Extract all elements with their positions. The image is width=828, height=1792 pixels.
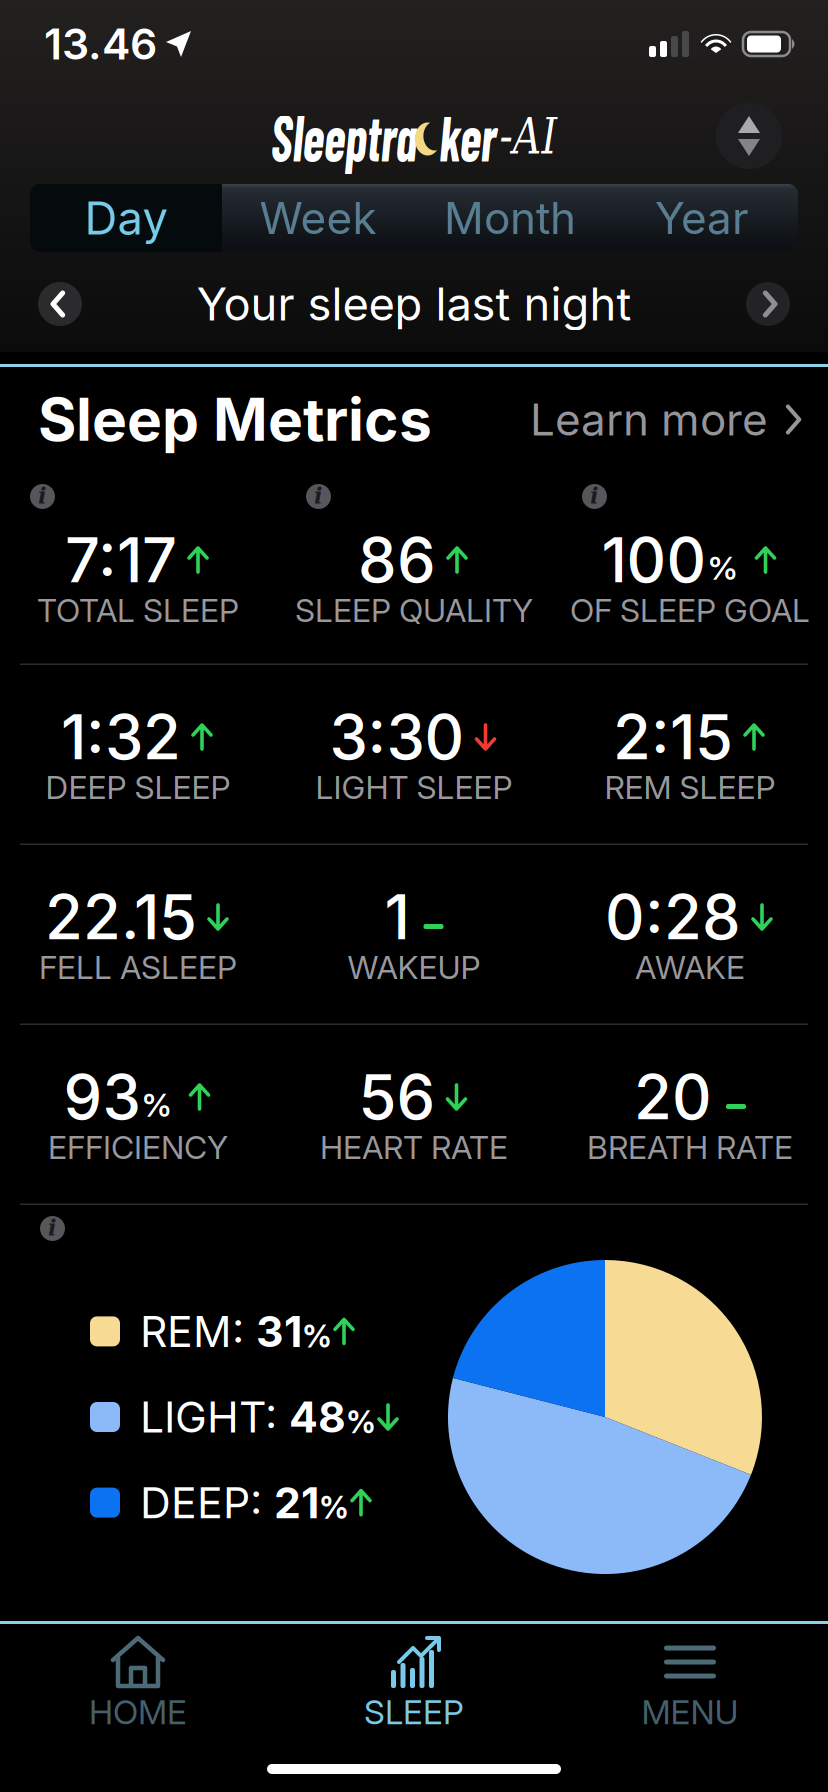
staticText: 1:32 [61,700,181,774]
staticText: % [319,1489,349,1526]
button[interactable]: Day [30,184,222,252]
staticText: Sleeptra [230,98,418,174]
staticText: 86 [358,523,436,597]
button[interactable]: Week [222,184,414,252]
staticText: REM SLEEP [604,768,775,807]
staticText: 20 [634,1060,712,1134]
button[interactable]: Month [414,184,606,252]
staticText: EFFICIENCY [48,1128,228,1167]
button[interactable]: SLEEP [276,1636,552,1732]
staticText: ker [446,98,519,174]
staticText: % [302,1318,332,1355]
staticText: -AI [523,106,597,165]
staticText: SLEEP QUALITY [295,591,533,630]
button[interactable]: Year [606,184,798,252]
staticText: 2:15 [613,700,733,774]
staticText: TOTAL SLEEP [37,591,239,630]
staticText: % [707,549,737,587]
staticText: % [141,1086,171,1124]
staticText: 48 [289,1391,346,1443]
staticText: Your sleep last night [196,277,631,331]
staticText: DEEP: [140,1477,274,1528]
button[interactable]: MENU [552,1636,828,1732]
staticText: MENU [641,1692,738,1732]
staticText: Sleep Metrics [38,384,432,455]
staticText: 13.46 [44,18,157,70]
staticText: 93 [63,1060,140,1134]
staticText: i [48,1214,57,1241]
staticText: 21 [274,1477,319,1528]
staticText: DEEP SLEEP [45,768,230,807]
staticText: Month [444,191,576,245]
button[interactable]: i [582,484,607,509]
button[interactable]: HOME [0,1636,276,1732]
button[interactable] [38,282,82,326]
staticText: 100 [601,523,706,597]
staticText: Week [259,191,376,245]
button[interactable]: i [306,484,331,509]
staticText: 31 [256,1306,302,1357]
staticText: FELL ASLEEP [39,948,237,987]
staticText: OF SLEEP GOAL [570,591,810,630]
staticText: LIGHT SLEEP [315,768,512,807]
staticText: WAKEUP [347,948,480,987]
button[interactable] [716,103,782,169]
staticText: i [314,482,323,509]
button[interactable] [746,282,790,326]
staticText: REM: [140,1306,256,1357]
staticText: Year [655,191,749,245]
staticText: 0:28 [605,880,741,954]
staticText: 7:17 [65,523,177,597]
button[interactable]: i [30,484,55,509]
staticText: HOME [89,1692,187,1732]
staticText: HEART RATE [320,1128,508,1167]
staticText: 3:30 [329,700,464,774]
staticText: i [590,482,599,509]
staticText: i [38,482,47,509]
staticText: 22.15 [45,880,197,954]
staticText: Learn more [530,393,768,446]
staticText: LIGHT: [140,1391,289,1443]
staticText: 56 [358,1060,435,1134]
staticText: Day [84,191,167,245]
staticText: SLEEP [364,1692,464,1732]
staticText: % [346,1403,376,1440]
staticText: BREATH RATE [587,1128,793,1167]
button[interactable]: Learn more [530,393,804,446]
staticText: 1 [384,880,409,954]
staticText: AWAKE [635,948,745,987]
button[interactable]: i [40,1216,65,1241]
